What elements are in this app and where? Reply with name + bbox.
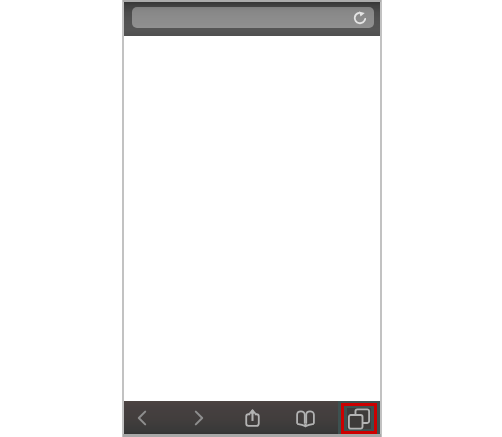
button[interactable]: Share bbox=[237, 401, 267, 434]
button[interactable]: Bookmarks bbox=[290, 401, 320, 434]
button[interactable]: Back bbox=[127, 401, 157, 434]
button[interactable]: Tabs bbox=[338, 401, 380, 434]
button[interactable]: Forward bbox=[184, 401, 214, 434]
button[interactable]: Reload bbox=[132, 7, 374, 28]
button[interactable]: Reload bbox=[352, 10, 368, 26]
